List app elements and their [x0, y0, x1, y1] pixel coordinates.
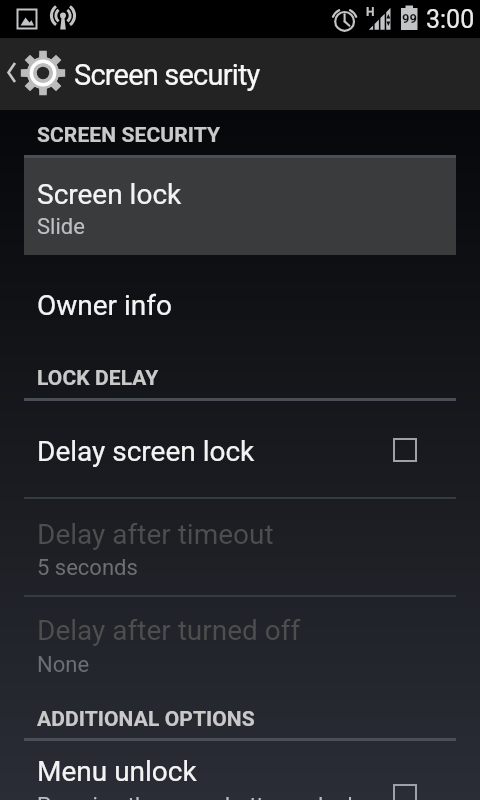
staticText: LOCK DELAY — [37, 366, 159, 391]
staticText: Delay after timeout — [37, 518, 274, 551]
staticText: Owner info — [37, 289, 173, 322]
staticText: Slide — [37, 214, 85, 240]
staticText: Menu unlock — [37, 755, 197, 788]
button[interactable]: Navigate up — [0, 38, 70, 110]
staticText: Screen security — [74, 58, 260, 92]
staticText: SCREEN SECURITY — [37, 123, 221, 148]
staticText: 5 seconds — [37, 555, 138, 581]
staticText: Pressing the menu button unlocks — [37, 793, 370, 800]
staticText: ADDITIONAL OPTIONS — [37, 707, 255, 732]
staticText: 3:00 — [426, 5, 475, 34]
button[interactable]: Owner info — [0, 265, 480, 343]
staticText: Screen lock — [37, 178, 182, 211]
staticText: Delay screen lock — [37, 435, 255, 468]
staticText: 99 — [402, 11, 417, 26]
button[interactable]: Menu unlock — [0, 740, 480, 800]
staticText: H — [366, 5, 375, 19]
button[interactable]: Delay screen lock — [0, 399, 480, 498]
staticText: None — [37, 652, 90, 678]
staticText: Delay after turned off — [37, 614, 301, 647]
button[interactable]: Screen lock — [24, 158, 456, 255]
